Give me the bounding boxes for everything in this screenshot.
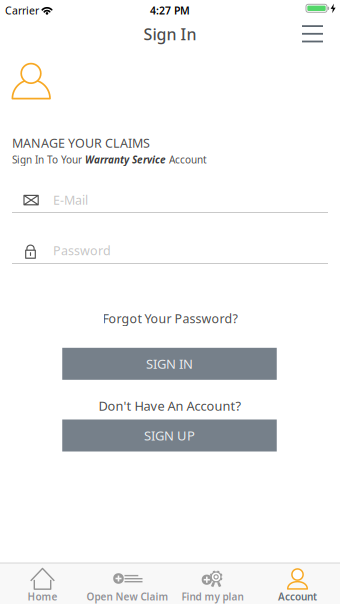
- button[interactable]: SIGN IN: [62, 348, 277, 380]
- staticText: 4:27 PM: [150, 3, 190, 18]
- staticText: Sign In: [143, 23, 196, 45]
- button[interactable]: Find my plan: [170, 563, 255, 604]
- staticText: Password: [53, 242, 111, 259]
- button[interactable]: SIGN UP: [62, 419, 277, 451]
- staticText: Forgot Your Password?: [102, 310, 237, 327]
- staticText: Don't Have An Account?: [98, 397, 241, 414]
- staticText: Find my plan: [181, 590, 243, 603]
- staticText: Home: [27, 590, 57, 603]
- staticText: SIGN IN: [146, 355, 193, 373]
- button[interactable]: E-Mail: [12, 183, 328, 217]
- button[interactable]: Open New Claim: [85, 563, 170, 604]
- button[interactable]: Forgot Your Password?: [60, 306, 280, 330]
- button[interactable]: Account: [255, 563, 340, 604]
- staticText: E-Mail: [53, 191, 88, 208]
- staticText: SIGN UP: [144, 427, 195, 444]
- button[interactable]: Menu: [295, 19, 329, 49]
- staticText: Warranty Service: [85, 153, 166, 166]
- staticText: Account: [166, 153, 207, 166]
- button[interactable]: Home: [0, 563, 85, 604]
- staticText: MANAGE YOUR CLAIMS: [12, 134, 150, 151]
- staticText: Sign In To Your: [12, 153, 85, 166]
- staticText: Carrier: [5, 3, 39, 18]
- button[interactable]: Password: [12, 233, 328, 267]
- staticText: Open New Claim: [86, 590, 168, 603]
- staticText: Account: [278, 590, 317, 603]
